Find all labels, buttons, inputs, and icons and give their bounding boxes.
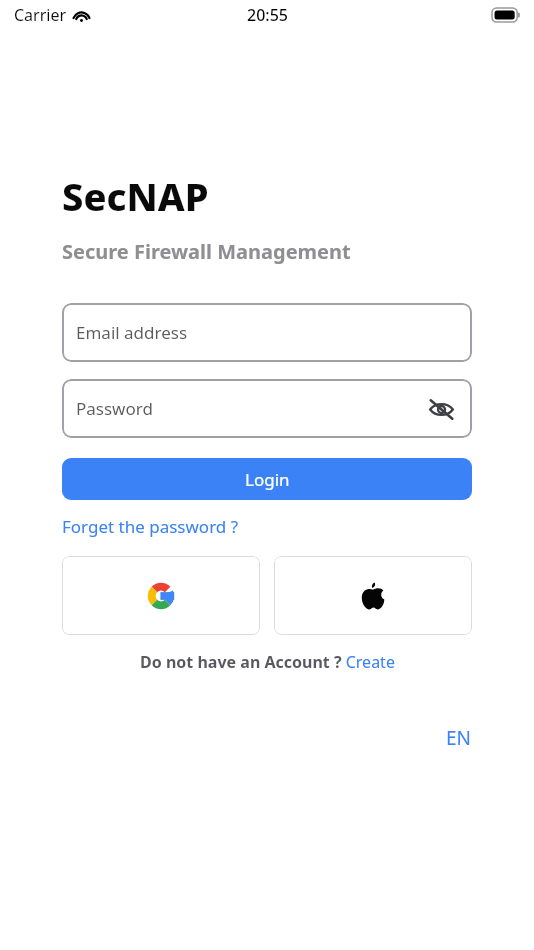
staticText: Secure Firewall Management xyxy=(62,238,351,265)
button[interactable]: Email address xyxy=(62,303,472,362)
button[interactable]: Login xyxy=(62,458,472,500)
button[interactable]: Sign in with Apple xyxy=(274,556,472,635)
staticText: EN xyxy=(446,725,472,751)
staticText: Email address xyxy=(76,321,188,344)
staticText: Password xyxy=(76,397,153,420)
button[interactable]: Password xyxy=(62,379,472,438)
staticText: Carrier xyxy=(14,4,67,26)
button[interactable]: Forget the password ? xyxy=(62,515,239,538)
button[interactable]: EN xyxy=(446,725,472,751)
staticText: SecNAP xyxy=(62,170,209,222)
button[interactable]: Sign in with Google xyxy=(62,556,260,635)
staticText: Login xyxy=(245,468,290,491)
button[interactable]: Show password xyxy=(424,392,458,426)
staticText: Do not have an Account ? Create xyxy=(140,651,395,673)
staticText: 20:55 xyxy=(247,4,288,26)
button[interactable]: Do not have an Account ? Create xyxy=(62,651,472,673)
staticText: Forget the password ? xyxy=(62,515,239,538)
